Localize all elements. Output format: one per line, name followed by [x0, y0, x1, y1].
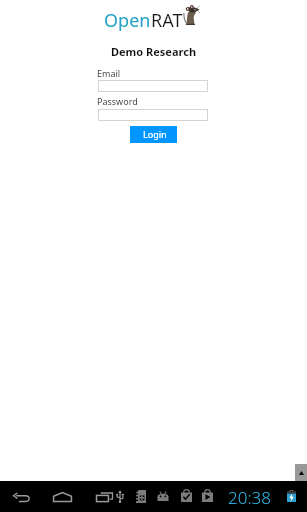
staticText: Email [97, 67, 121, 79]
button[interactable]: Scroll to top [295, 464, 307, 481]
staticText: 20:38 [228, 486, 271, 509]
button[interactable]: Recent apps [91, 485, 117, 509]
staticText: RAT [151, 8, 183, 33]
staticText: Login [143, 128, 167, 140]
button[interactable]: Email field [98, 80, 208, 92]
staticText: Demo Research [0, 44, 307, 59]
button[interactable]: Home [48, 485, 77, 509]
button[interactable]: Password field [98, 109, 208, 121]
button[interactable]: Login [130, 126, 177, 143]
staticText: Open [104, 8, 151, 33]
staticText: Password [97, 95, 138, 107]
button[interactable]: Back [7, 485, 36, 509]
